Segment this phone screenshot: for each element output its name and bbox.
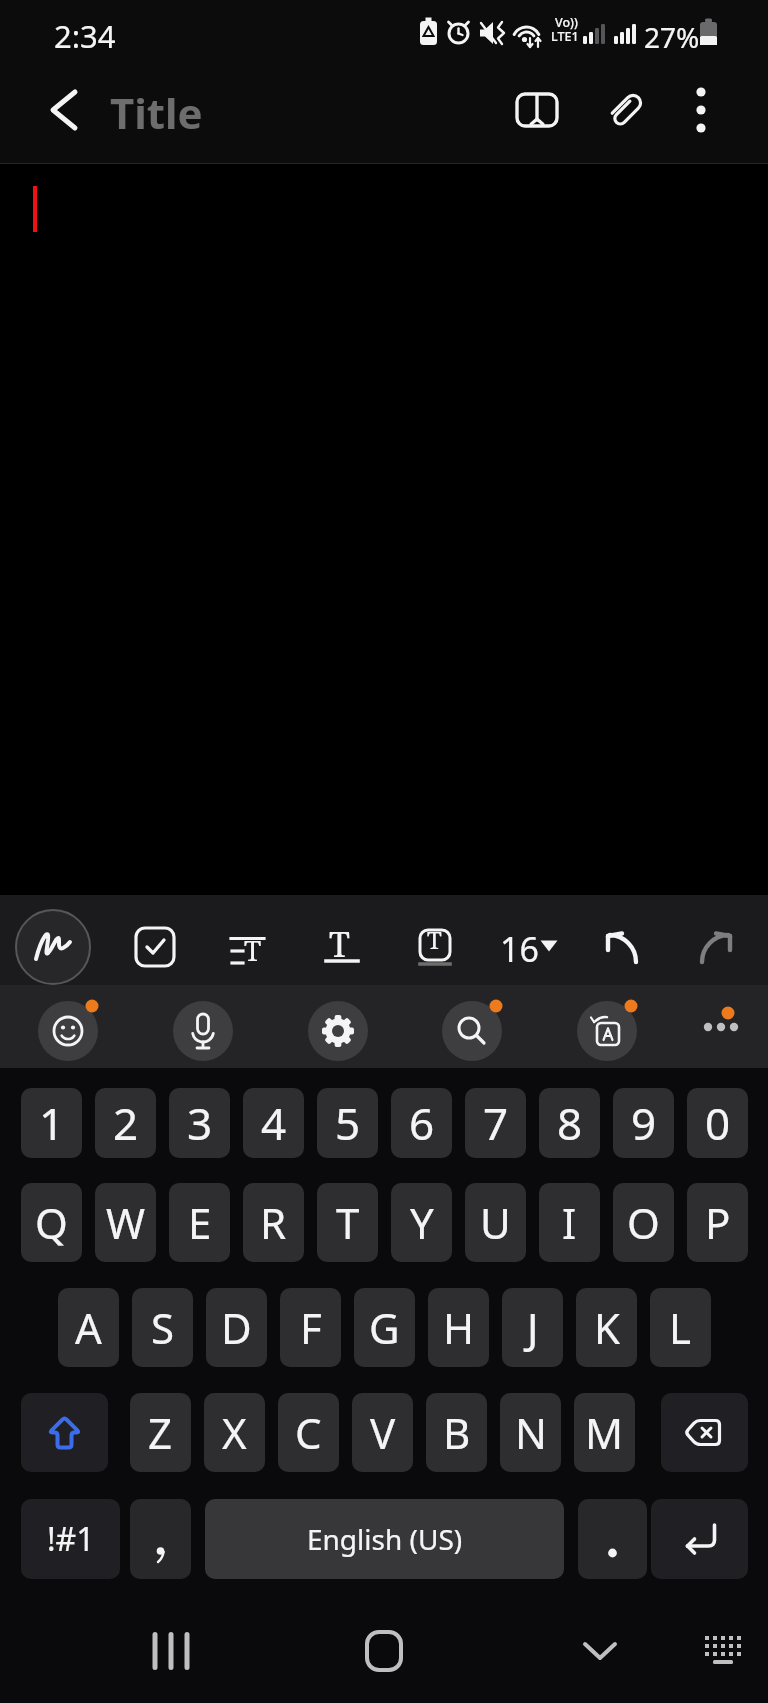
- button[interactable]: D: [206, 1288, 267, 1367]
- button[interactable]: I: [539, 1183, 600, 1262]
- button[interactable]: [685, 915, 749, 979]
- button[interactable]: [651, 1499, 748, 1579]
- button[interactable]: [700, 1007, 742, 1047]
- button[interactable]: 9: [613, 1088, 674, 1158]
- button[interactable]: 8: [539, 1088, 600, 1158]
- button[interactable]: 2: [95, 1088, 156, 1158]
- button[interactable]: W: [95, 1183, 156, 1262]
- button[interactable]: [661, 1393, 748, 1472]
- button[interactable]: [130, 1499, 191, 1579]
- staticText: E: [188, 1194, 212, 1251]
- button[interactable]: K: [576, 1288, 637, 1367]
- staticText: 4: [261, 1093, 287, 1153]
- button[interactable]: [677, 86, 725, 134]
- staticText: U: [480, 1194, 511, 1251]
- button[interactable]: Y: [391, 1183, 452, 1262]
- button[interactable]: U: [465, 1183, 526, 1262]
- staticText: 3: [187, 1093, 213, 1153]
- button[interactable]: F: [280, 1288, 341, 1367]
- button[interactable]: [173, 1001, 233, 1061]
- button[interactable]: [442, 1001, 502, 1061]
- button[interactable]: T: [216, 915, 280, 979]
- staticText: Title: [110, 84, 203, 141]
- staticText: 8: [557, 1093, 583, 1153]
- button[interactable]: [602, 86, 650, 134]
- staticText: G: [369, 1299, 400, 1356]
- staticText: M: [585, 1404, 624, 1461]
- button[interactable]: [578, 1499, 647, 1579]
- staticText: O: [627, 1194, 660, 1251]
- staticText: C: [295, 1404, 322, 1461]
- button[interactable]: [359, 1626, 409, 1676]
- button[interactable]: 6: [391, 1088, 452, 1158]
- button[interactable]: J: [502, 1288, 563, 1367]
- button[interactable]: O: [613, 1183, 674, 1262]
- button[interactable]: !#1: [21, 1499, 120, 1579]
- button[interactable]: T: [310, 915, 374, 979]
- staticText: K: [594, 1299, 620, 1356]
- staticText: W: [106, 1194, 146, 1251]
- button[interactable]: [575, 1626, 625, 1676]
- button[interactable]: 7: [465, 1088, 526, 1158]
- button[interactable]: English (US): [205, 1499, 564, 1579]
- button[interactable]: [308, 1001, 368, 1061]
- staticText: 27%: [644, 18, 700, 56]
- staticText: 7: [483, 1093, 509, 1153]
- button[interactable]: T: [317, 1183, 378, 1262]
- button[interactable]: A: [58, 1288, 119, 1367]
- staticText: !#1: [47, 1517, 95, 1561]
- button[interactable]: P: [687, 1183, 748, 1262]
- staticText: 2:34: [54, 15, 116, 57]
- staticText: 6: [409, 1093, 435, 1153]
- button[interactable]: 4: [243, 1088, 304, 1158]
- staticText: J: [527, 1299, 539, 1356]
- staticText: P: [705, 1194, 731, 1251]
- staticText: 0: [705, 1093, 731, 1153]
- staticText: L: [669, 1299, 692, 1356]
- staticText: Vo)): [555, 14, 578, 31]
- button[interactable]: [40, 86, 88, 134]
- button[interactable]: Z: [130, 1393, 191, 1472]
- staticText: 5: [335, 1093, 361, 1153]
- button[interactable]: [577, 1001, 637, 1061]
- staticText: D: [221, 1299, 252, 1356]
- button[interactable]: [589, 915, 653, 979]
- staticText: X: [222, 1404, 247, 1461]
- button[interactable]: T: [403, 915, 467, 979]
- staticText: T: [427, 923, 442, 956]
- button[interactable]: [698, 1626, 748, 1676]
- button[interactable]: V: [352, 1393, 413, 1472]
- button[interactable]: C: [278, 1393, 339, 1472]
- button[interactable]: 0: [687, 1088, 748, 1158]
- button[interactable]: [38, 1001, 98, 1061]
- staticText: B: [443, 1404, 471, 1461]
- button[interactable]: N: [500, 1393, 561, 1472]
- button[interactable]: G: [354, 1288, 415, 1367]
- staticText: 16: [500, 926, 539, 972]
- button[interactable]: E: [169, 1183, 230, 1262]
- button[interactable]: [146, 1626, 196, 1676]
- staticText: V: [370, 1404, 396, 1461]
- button[interactable]: [13, 907, 93, 987]
- staticText: H: [443, 1299, 475, 1356]
- button[interactable]: 16: [492, 915, 568, 979]
- button[interactable]: M: [574, 1393, 635, 1472]
- staticText: T: [336, 1194, 360, 1251]
- button[interactable]: B: [426, 1393, 487, 1472]
- button[interactable]: R: [243, 1183, 304, 1262]
- button[interactable]: H: [428, 1288, 489, 1367]
- button[interactable]: [21, 1393, 108, 1472]
- button[interactable]: 1: [21, 1088, 82, 1158]
- button[interactable]: [513, 86, 561, 134]
- button[interactable]: L: [650, 1288, 711, 1367]
- staticText: English (US): [307, 1520, 463, 1558]
- button[interactable]: Title: [110, 84, 203, 141]
- button[interactable]: 5: [317, 1088, 378, 1158]
- button[interactable]: X: [204, 1393, 265, 1472]
- staticText: S: [151, 1299, 175, 1356]
- staticText: Y: [410, 1194, 434, 1251]
- button[interactable]: S: [132, 1288, 193, 1367]
- button[interactable]: [123, 915, 187, 979]
- button[interactable]: Q: [21, 1183, 82, 1262]
- button[interactable]: 3: [169, 1088, 230, 1158]
